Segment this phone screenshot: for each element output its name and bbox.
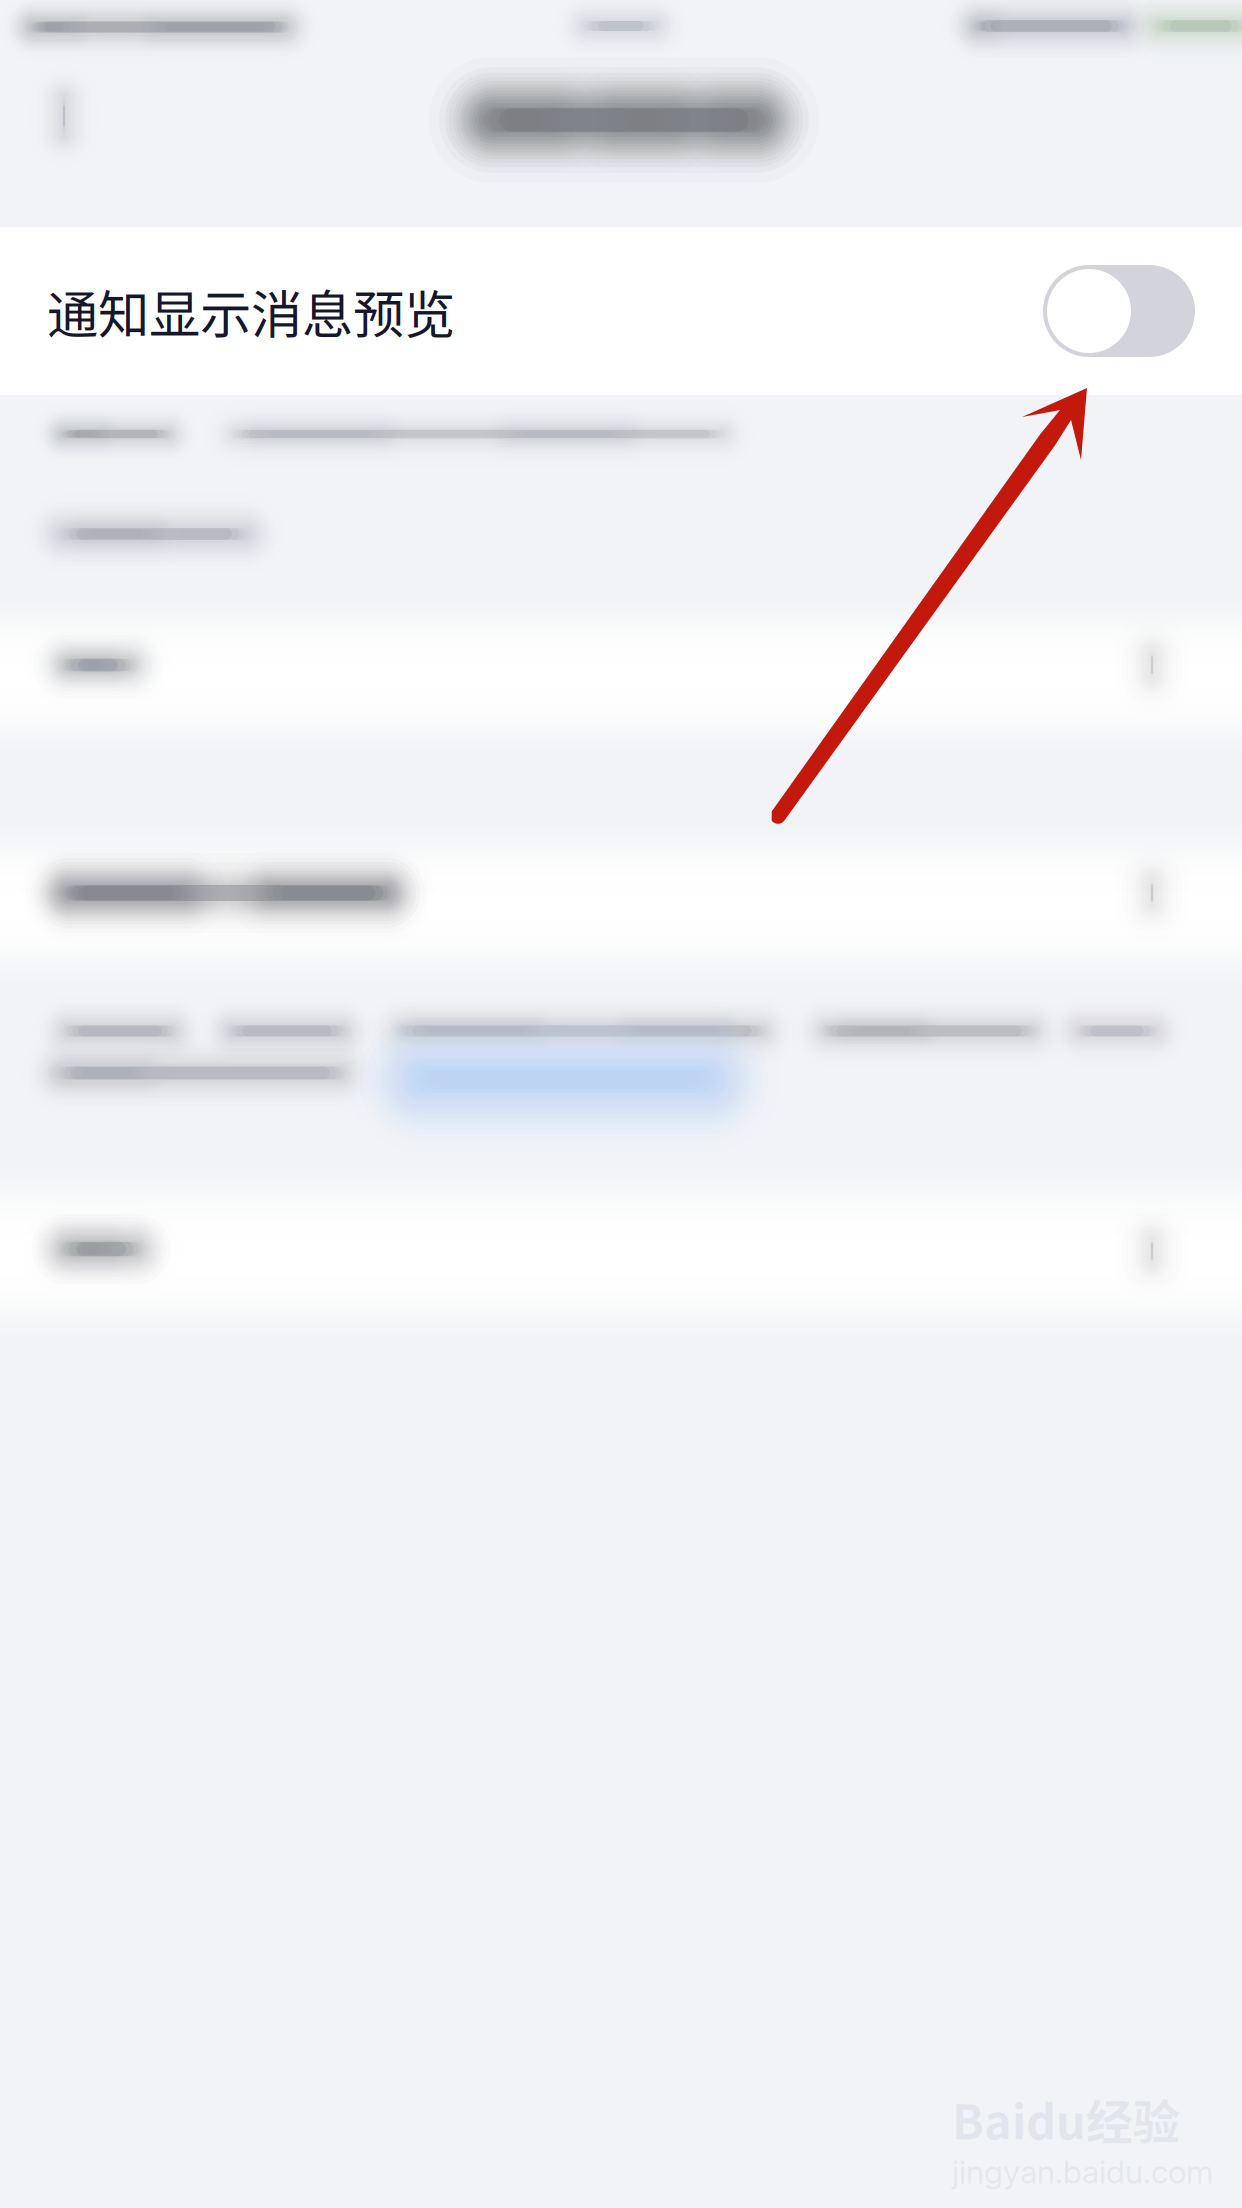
staticText: jingyan.baidu.com: [952, 2153, 1213, 2191]
staticText: Baidu经验: [952, 2085, 1180, 2153]
staticText: 通知显示消息预览: [47, 274, 455, 348]
button[interactable]: 通知显示消息预览: [0, 227, 1242, 395]
